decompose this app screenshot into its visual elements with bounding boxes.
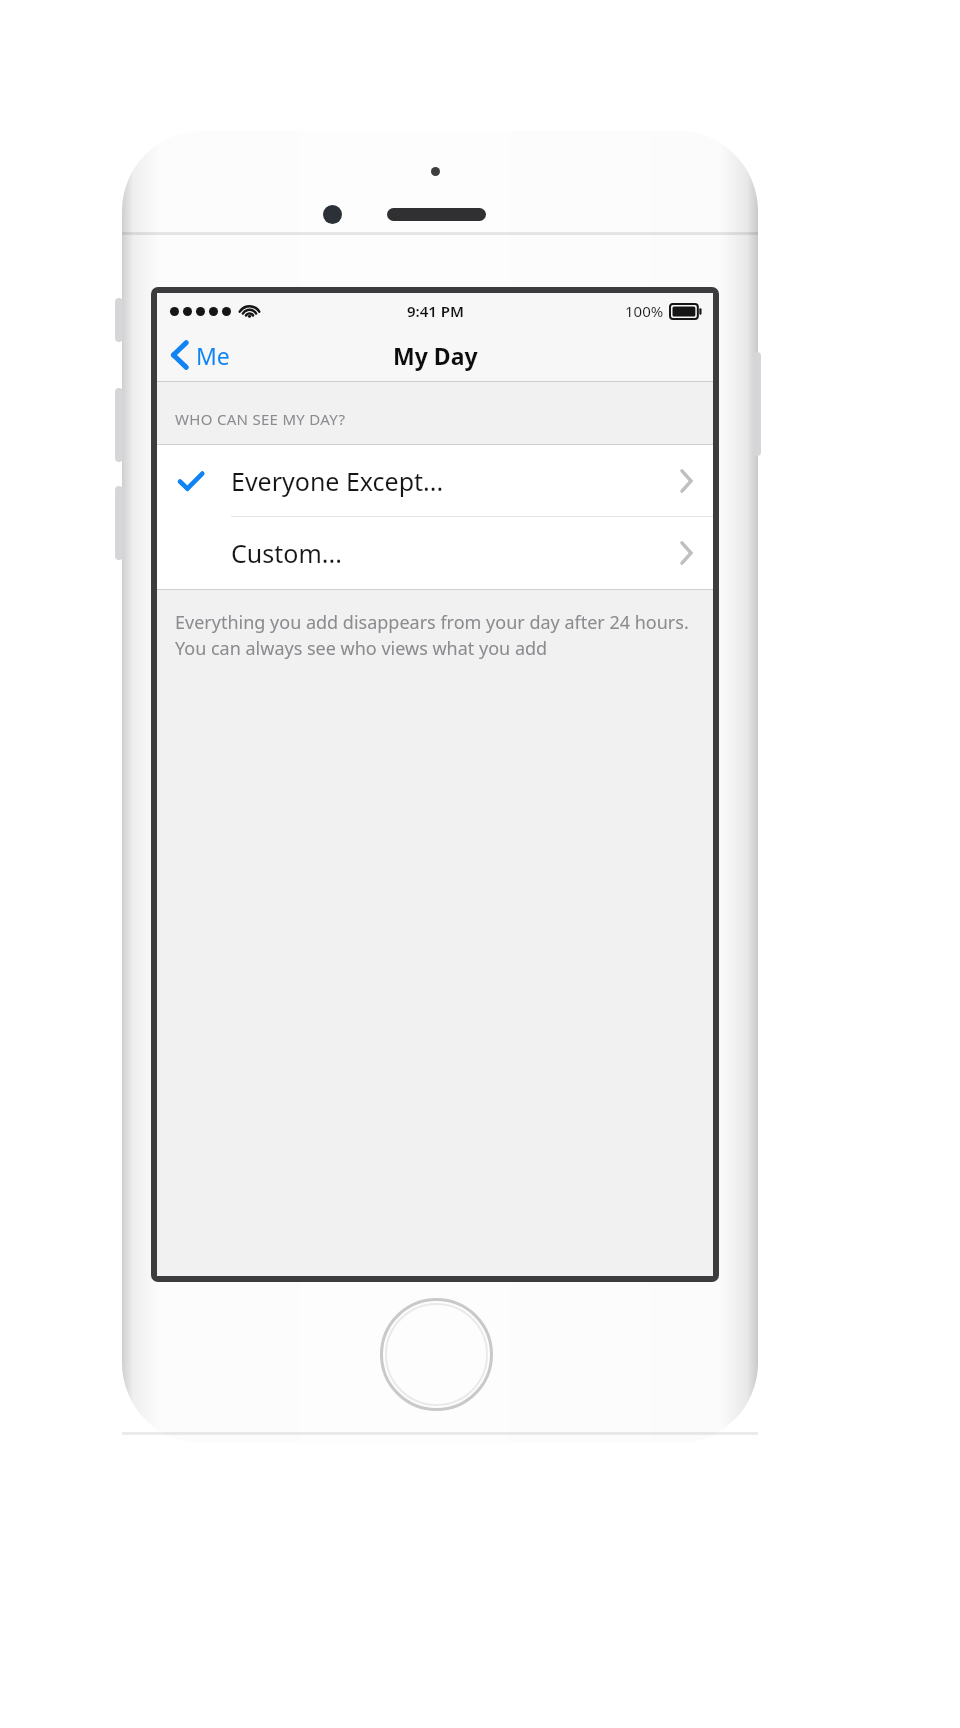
staticText: Everyone Except... bbox=[231, 464, 444, 498]
button[interactable]: Back bbox=[157, 328, 242, 382]
staticText: Me bbox=[196, 340, 230, 371]
staticText: My Day bbox=[393, 340, 478, 371]
staticText: 9:41 PM bbox=[407, 301, 464, 321]
button[interactable]: Everyone Except... bbox=[157, 445, 713, 517]
other: Back bbox=[171, 341, 188, 369]
staticText: WHO CAN SEE MY DAY? bbox=[175, 409, 346, 429]
staticText: 100% bbox=[625, 301, 664, 321]
staticText: Everything you add disappears from your … bbox=[175, 610, 691, 660]
button[interactable]: Custom... bbox=[157, 517, 713, 589]
staticText: Custom... bbox=[231, 536, 342, 570]
